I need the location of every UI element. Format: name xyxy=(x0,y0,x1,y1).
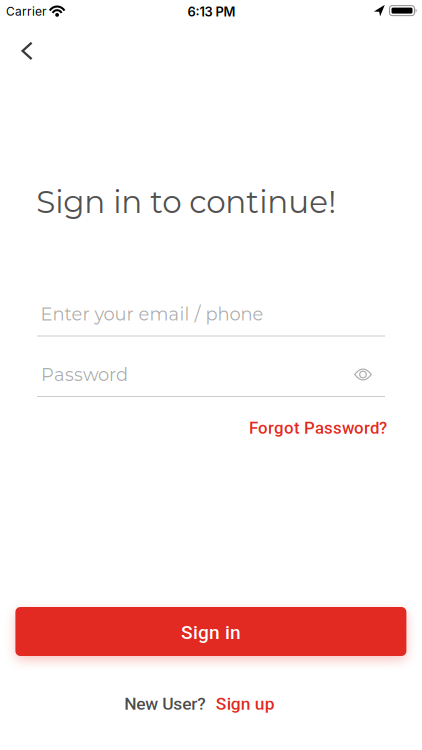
staticText: Carrier xyxy=(6,4,47,19)
staticText: Sign in to continue! xyxy=(36,183,336,221)
button[interactable]: Forgot Password? xyxy=(249,418,387,438)
button[interactable]: Back xyxy=(7,31,47,71)
button[interactable]: Show password xyxy=(348,361,378,388)
staticText: Password xyxy=(41,364,128,386)
button[interactable]: Sign in xyxy=(15,607,406,656)
button[interactable]: Password xyxy=(37,364,385,398)
staticText: Sign up xyxy=(216,693,275,714)
staticText: Forgot Password? xyxy=(249,418,387,438)
button[interactable]: Enter your email / phone xyxy=(37,303,385,337)
staticText: Sign in xyxy=(181,621,241,644)
staticText: 6:13 PM xyxy=(187,4,235,20)
button[interactable]: Sign up xyxy=(216,693,275,714)
staticText: Enter your email / phone xyxy=(40,303,263,325)
staticText: New User? xyxy=(124,693,205,714)
